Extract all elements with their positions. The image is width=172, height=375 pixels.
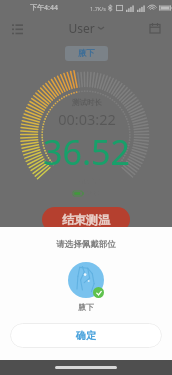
staticText: 测试时长	[72, 98, 102, 107]
staticText: 请选择佩戴部位	[56, 239, 116, 250]
staticText: 腋下	[78, 302, 94, 312]
staticText: 36.52	[43, 129, 130, 175]
button[interactable]: 确定	[10, 323, 162, 348]
button[interactable]: Records	[146, 19, 164, 37]
button[interactable]: 腋下	[68, 262, 104, 312]
button[interactable]: 结束测温	[42, 207, 130, 232]
staticText: 确定	[76, 329, 96, 342]
staticText: 下午4:44	[30, 3, 58, 13]
button[interactable]: 腋下	[65, 46, 108, 61]
button[interactable]: Menu	[8, 19, 26, 37]
staticText: 结束测温	[62, 212, 110, 227]
button[interactable]: User	[68, 20, 104, 36]
staticText: User	[68, 20, 95, 36]
staticText: 1.7K/s	[90, 5, 106, 12]
staticText: 腋下	[78, 48, 95, 59]
staticText: 00:03:22	[58, 109, 116, 129]
button[interactable]: 最高温度	[0, 247, 172, 281]
